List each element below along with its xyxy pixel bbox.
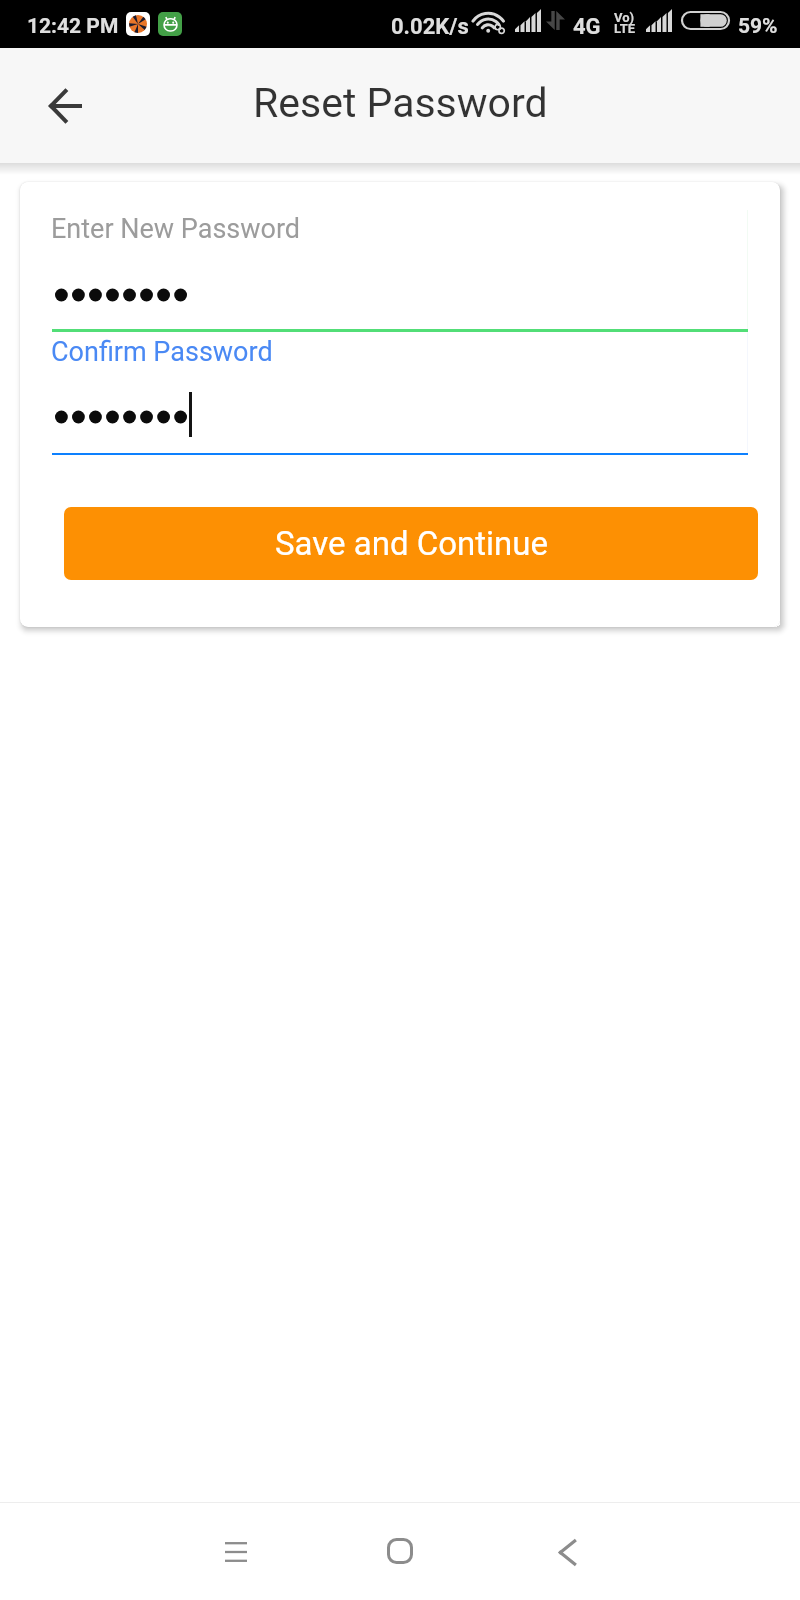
staticText: Save and Continue [275, 524, 548, 563]
staticText: 4G [573, 14, 601, 40]
button[interactable]: Back [532, 1517, 602, 1587]
staticText: LTE [614, 21, 636, 36]
staticText: Reset Password [253, 79, 548, 127]
button[interactable]: Save and Continue [64, 507, 758, 580]
button[interactable]: Back [25, 66, 105, 146]
staticText: 0.02K/s [391, 14, 469, 40]
staticText: Confirm Password [51, 336, 273, 368]
staticText: 59% [738, 14, 778, 39]
staticText: Enter New Password [51, 213, 301, 245]
staticText: 12:42 PM [27, 14, 119, 39]
staticText: Vo) [614, 10, 635, 25]
button[interactable]: Home [365, 1516, 435, 1586]
button[interactable]: Recent apps [201, 1517, 271, 1587]
